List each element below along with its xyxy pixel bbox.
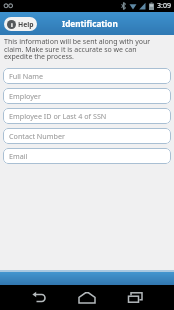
- button[interactable]: Email: [3, 148, 171, 164]
- button[interactable]: [0, 270, 174, 285]
- staticText: Contact Number: [9, 131, 65, 141]
- staticText: i: [11, 21, 13, 29]
- button[interactable]: Employee ID or Last 4 of SSN: [3, 108, 171, 124]
- button[interactable]: i: [4, 17, 37, 31]
- staticText: Email: [9, 151, 28, 161]
- staticText: Employer: [9, 91, 41, 101]
- staticText: Help: [18, 20, 34, 29]
- button[interactable]: [70, 285, 104, 310]
- button[interactable]: [22, 285, 56, 310]
- staticText: Full Name: [9, 71, 44, 81]
- staticText: 3:09: [157, 1, 171, 11]
- button[interactable]: Employer: [3, 88, 171, 104]
- button[interactable]: Contact Number: [3, 128, 171, 144]
- staticText: Employee ID or Last 4 of SSN: [9, 111, 107, 121]
- staticText: Identification: [62, 18, 118, 29]
- button[interactable]: [118, 285, 152, 310]
- button[interactable]: Full Name: [3, 68, 171, 84]
- staticText: This information will be sent along with…: [4, 37, 151, 61]
